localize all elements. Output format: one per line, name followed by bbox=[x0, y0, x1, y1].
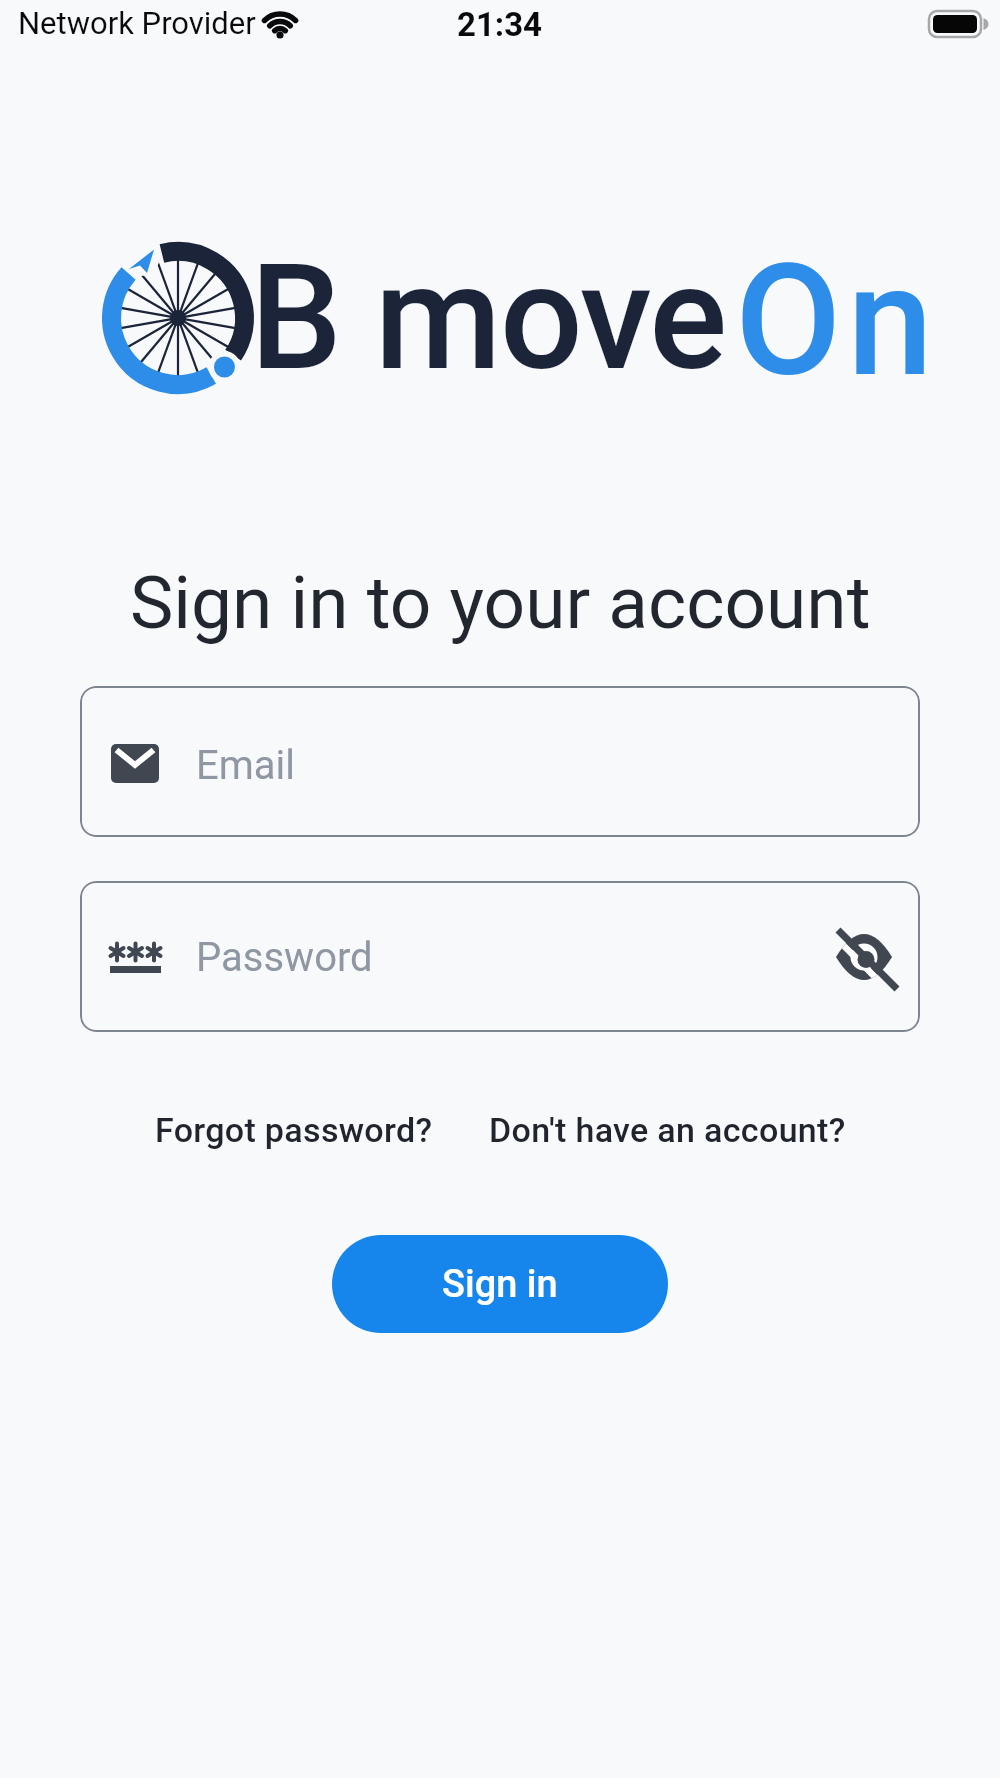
button[interactable] bbox=[80, 881, 920, 1032]
staticText: Network Provider bbox=[18, 5, 256, 41]
button[interactable] bbox=[830, 924, 900, 994]
button[interactable]: Don't have an account? bbox=[489, 1110, 846, 1150]
staticText: Sign in to your account bbox=[130, 560, 871, 646]
button[interactable]: Forgot password? bbox=[155, 1110, 433, 1150]
staticText: B move bbox=[250, 233, 726, 404]
staticText: Email bbox=[196, 742, 296, 789]
staticText: On bbox=[735, 231, 939, 411]
staticText: 21:34 bbox=[457, 5, 543, 44]
button[interactable]: Sign in bbox=[332, 1235, 668, 1333]
button[interactable] bbox=[80, 686, 920, 837]
staticText: Password bbox=[196, 934, 373, 981]
staticText: Sign in bbox=[442, 1262, 558, 1307]
